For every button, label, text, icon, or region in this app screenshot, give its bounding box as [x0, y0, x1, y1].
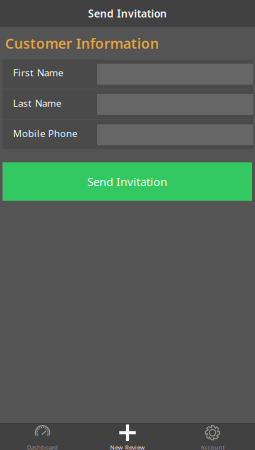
button[interactable]: Dashboard [0, 423, 85, 450]
staticText: New Review [110, 443, 145, 450]
staticText: Account [200, 443, 224, 450]
button[interactable]: Send Invitation [2, 162, 252, 201]
staticText: Dashboard [27, 443, 58, 450]
staticText: Mobile Phone [13, 126, 77, 140]
staticText: Last Name [13, 96, 61, 109]
button[interactable]: New Review [85, 423, 170, 450]
staticText: Send Invitation [88, 6, 167, 21]
staticText: Customer Information [5, 34, 159, 53]
staticText: Send Invitation [87, 174, 167, 189]
staticText: First Name [13, 66, 63, 79]
button[interactable]: Account [170, 423, 255, 450]
